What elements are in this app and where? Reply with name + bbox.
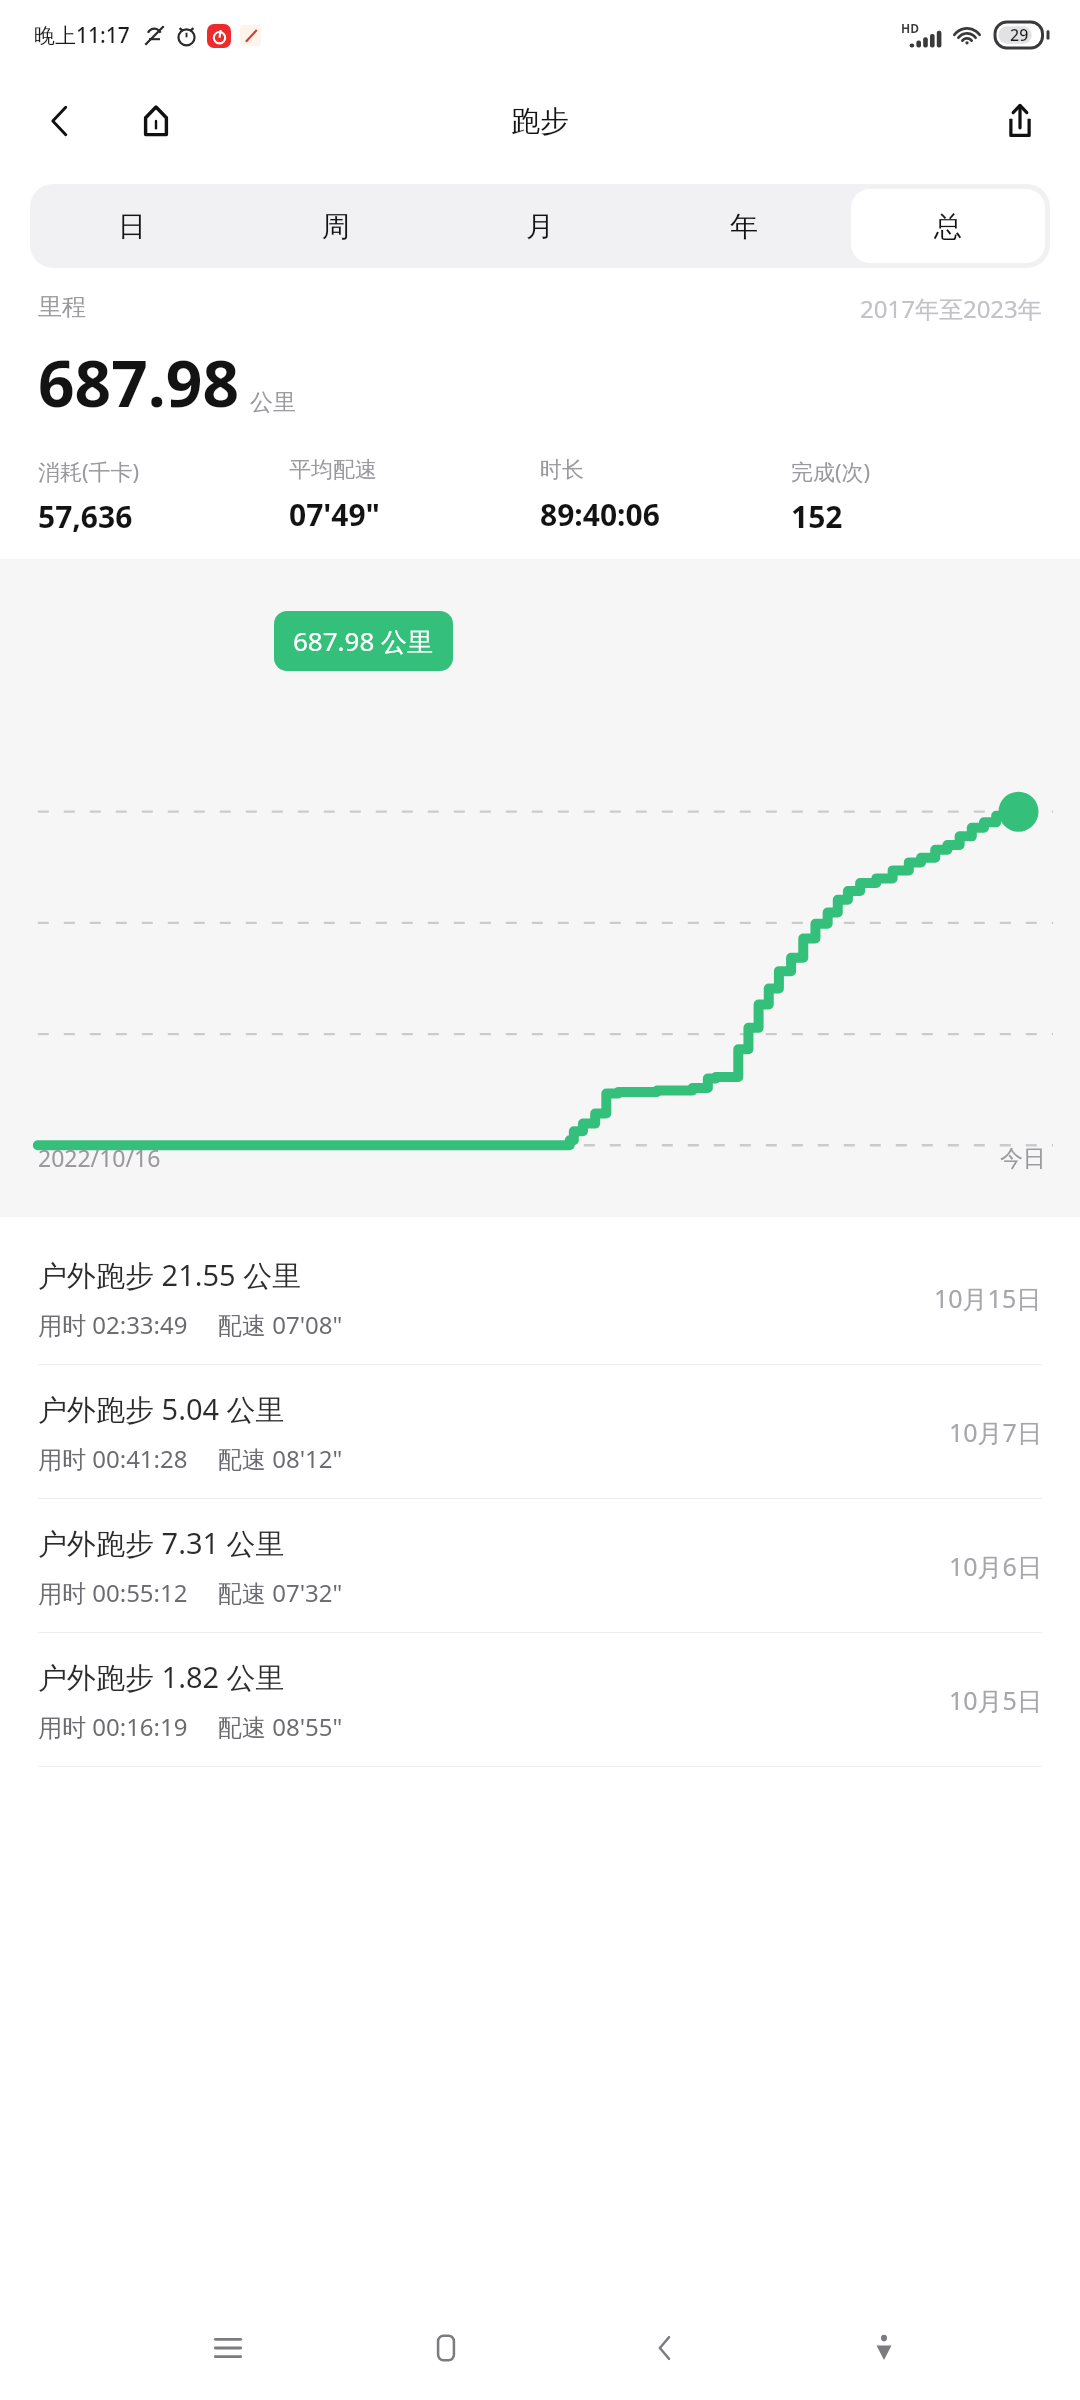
button[interactable]: 户外跑步 5.04 公里 <box>0 1365 1080 1499</box>
staticText: 用时 02:33:49 <box>38 1308 188 1341</box>
staticText: 152 <box>791 496 843 537</box>
staticText: 平均配速 <box>289 456 377 484</box>
staticText: 用时 00:16:19 <box>38 1710 188 1743</box>
staticText: 29 <box>1010 24 1029 46</box>
staticText: 配速 07'08" <box>218 1308 343 1341</box>
staticText: 跑步 <box>511 103 569 140</box>
button[interactable]: 日 <box>35 189 229 263</box>
staticText: 年 <box>730 209 758 244</box>
staticText: 57,636 <box>38 496 133 537</box>
staticText: 10月6日 <box>949 1549 1042 1583</box>
staticText: 完成(次) <box>791 456 871 486</box>
staticText: 10月7日 <box>949 1415 1042 1449</box>
staticText: 89:40:06 <box>540 494 660 535</box>
staticText: 户外跑步 1.82 公里 <box>38 1657 285 1697</box>
button[interactable]: Share <box>986 87 1054 155</box>
button[interactable]: 户外跑步 21.55 公里 <box>0 1231 1080 1365</box>
button[interactable]: 户外跑步 1.82 公里 <box>0 1633 1080 1767</box>
staticText: 2017年至2023年 <box>860 292 1042 325</box>
staticText: 日 <box>118 209 146 244</box>
button[interactable]: Back <box>622 2305 708 2391</box>
staticText: 配速 07'32" <box>218 1576 343 1609</box>
button[interactable]: 总 <box>851 189 1045 263</box>
staticText: 今日 <box>1000 1144 1046 1173</box>
staticText: 户外跑步 7.31 公里 <box>38 1523 285 1563</box>
staticText: 消耗(千卡) <box>38 456 140 486</box>
staticText: 用时 00:55:12 <box>38 1576 188 1609</box>
staticText: 里程 <box>38 292 86 322</box>
staticText: 07'49" <box>289 494 380 535</box>
button[interactable]: 月 <box>443 189 637 263</box>
staticText: 户外跑步 5.04 公里 <box>38 1389 285 1429</box>
staticText: 687.98 公里 <box>293 623 434 659</box>
button[interactable]: Hide keyboard <box>841 2305 927 2391</box>
staticText: 时长 <box>540 456 584 484</box>
staticText: 2022/10/16 <box>38 1142 161 1173</box>
staticText: 10月5日 <box>949 1683 1042 1717</box>
staticText: 10月15日 <box>934 1281 1042 1315</box>
staticText: 687.98 <box>38 339 240 426</box>
staticText: 户外跑步 21.55 公里 <box>38 1255 302 1295</box>
button[interactable]: 户外跑步 7.31 公里 <box>0 1499 1080 1633</box>
button[interactable]: 年 <box>647 189 841 263</box>
button[interactable]: Recent apps <box>185 2305 271 2391</box>
button[interactable]: Back <box>26 87 94 155</box>
button[interactable]: Home <box>403 2305 489 2391</box>
button[interactable]: Home <box>122 87 190 155</box>
staticText: 公里 <box>250 388 296 417</box>
button[interactable]: 周 <box>239 189 433 263</box>
staticText: 用时 00:41:28 <box>38 1442 188 1475</box>
staticText: 总 <box>934 209 962 244</box>
staticText: 周 <box>322 209 350 244</box>
staticText: HD <box>901 20 919 36</box>
staticText: 晚上11:17 <box>34 21 130 50</box>
staticText: 配速 08'12" <box>218 1442 343 1475</box>
staticText: 配速 08'55" <box>218 1710 343 1743</box>
staticText: 月 <box>526 209 554 244</box>
